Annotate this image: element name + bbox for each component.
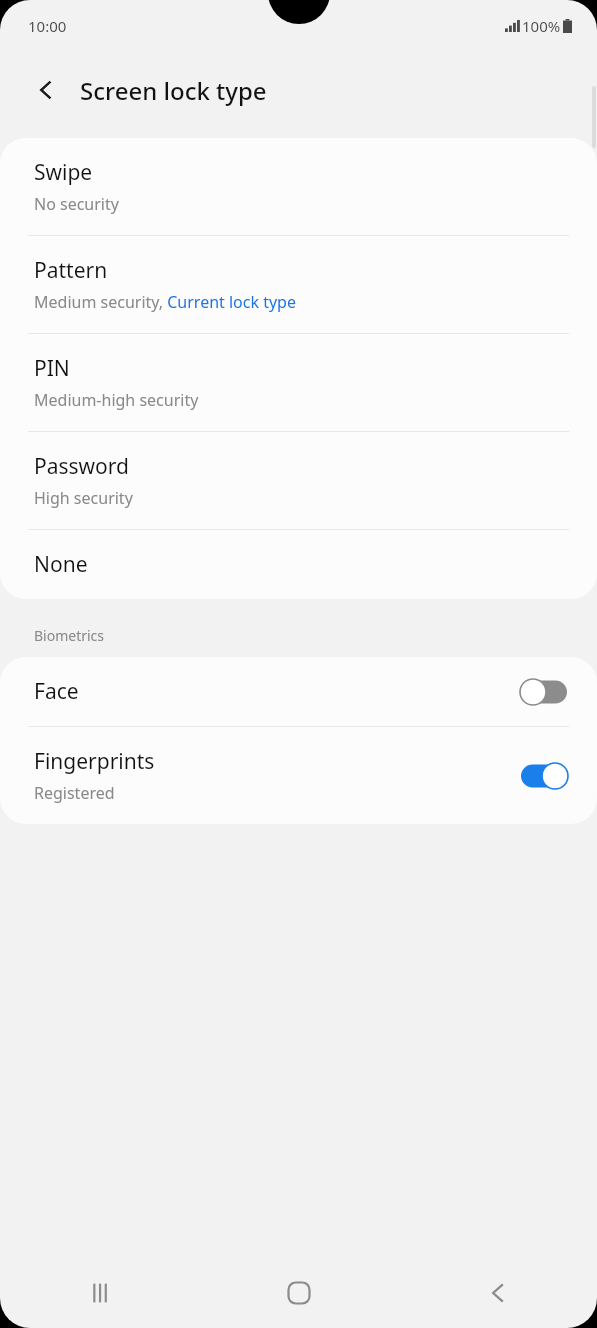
- button[interactable]: Recents: [0, 1258, 199, 1328]
- staticText: Swipe: [34, 158, 93, 187]
- staticText: None: [34, 550, 88, 579]
- staticText: Medium-high security: [34, 389, 199, 411]
- staticText: 100%: [522, 16, 561, 36]
- button[interactable]: PIN: [0, 334, 597, 431]
- staticText: 10:00: [28, 16, 67, 36]
- button[interactable]: Swipe: [0, 138, 597, 235]
- staticText: Fingerprints: [34, 747, 155, 776]
- staticText: Face: [34, 677, 79, 706]
- staticText: Pattern: [34, 256, 108, 285]
- staticText: Registered: [34, 782, 115, 804]
- button[interactable]: Pattern: [0, 236, 597, 333]
- button[interactable]: None: [0, 530, 597, 599]
- staticText: Biometrics: [34, 626, 105, 645]
- button[interactable]: Off: [519, 678, 569, 706]
- button[interactable]: Fingerprints: [0, 727, 597, 824]
- staticText: Password: [34, 452, 129, 481]
- button[interactable]: Password: [0, 432, 597, 529]
- button[interactable]: Face: [0, 657, 597, 726]
- staticText: Medium security, Current lock type: [34, 291, 296, 313]
- staticText: High security: [34, 487, 133, 509]
- staticText: No security: [34, 193, 119, 215]
- button[interactable]: Back: [398, 1258, 597, 1328]
- staticText: Screen lock type: [80, 74, 267, 107]
- button[interactable]: Back: [24, 68, 68, 112]
- button[interactable]: Home: [199, 1258, 398, 1328]
- button[interactable]: On: [519, 762, 569, 790]
- staticText: PIN: [34, 354, 70, 383]
